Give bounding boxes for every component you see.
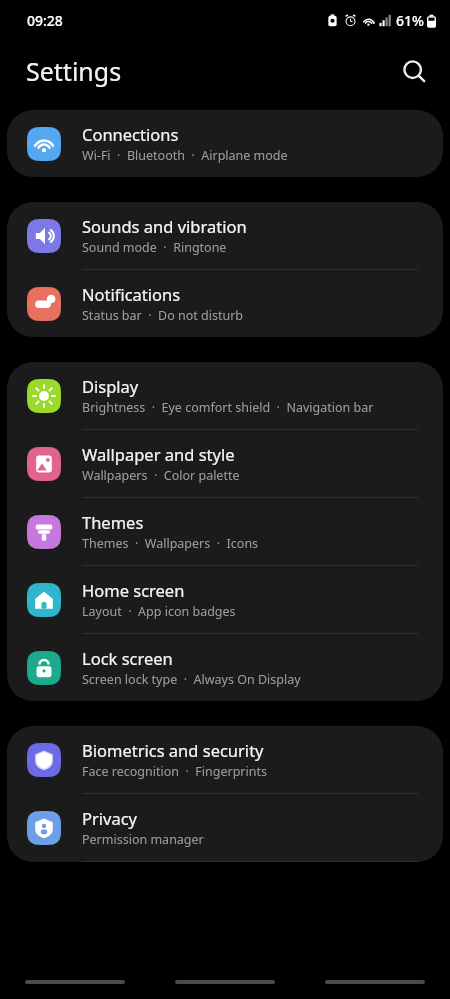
- staticText: Biometrics and security: [82, 739, 264, 761]
- button[interactable]: Back: [300, 965, 450, 999]
- staticText: Notifications: [82, 283, 181, 305]
- button[interactable]: Themes: [7, 498, 443, 565]
- button[interactable]: Display: [7, 362, 443, 429]
- staticText: Face recognition · Fingerprints: [82, 763, 267, 780]
- button[interactable]: Notifications: [7, 270, 443, 337]
- staticText: Wi-Fi · Bluetooth · Airplane mode: [82, 147, 288, 164]
- staticText: Wallpapers · Color palette: [82, 467, 240, 484]
- button[interactable]: Lock screen: [7, 634, 443, 701]
- button[interactable]: Home screen: [7, 566, 443, 633]
- staticText: Sounds and vibration: [82, 215, 247, 237]
- staticText: Screen lock type · Always On Display: [82, 671, 301, 688]
- staticText: Themes: [82, 511, 144, 533]
- staticText: Layout · App icon badges: [82, 603, 236, 620]
- button[interactable]: Biometrics and security: [7, 726, 443, 793]
- staticText: Connections: [82, 123, 179, 145]
- button[interactable]: Privacy: [7, 794, 443, 861]
- staticText: Home screen: [82, 579, 185, 601]
- button[interactable]: Recents: [0, 965, 150, 999]
- button[interactable]: Home: [150, 965, 300, 999]
- staticText: Wallpaper and style: [82, 443, 235, 465]
- button[interactable]: Wallpaper and style: [7, 430, 443, 497]
- button[interactable]: Search: [392, 49, 436, 93]
- staticText: Brightness · Eye comfort shield · Naviga…: [82, 399, 374, 416]
- staticText: Sound mode · Ringtone: [82, 239, 227, 256]
- staticText: Themes · Wallpapers · Icons: [82, 535, 259, 552]
- staticText: Display: [82, 375, 139, 397]
- button[interactable]: Sounds and vibration: [7, 202, 443, 269]
- button[interactable]: Connections: [7, 110, 443, 177]
- staticText: Lock screen: [82, 647, 173, 669]
- staticText: 61%: [396, 11, 424, 30]
- staticText: 09:28: [27, 11, 63, 30]
- staticText: Status bar · Do not disturb: [82, 307, 244, 324]
- staticText: Privacy: [82, 807, 138, 829]
- staticText: Permission manager: [82, 831, 204, 848]
- staticText: Settings: [26, 54, 122, 88]
